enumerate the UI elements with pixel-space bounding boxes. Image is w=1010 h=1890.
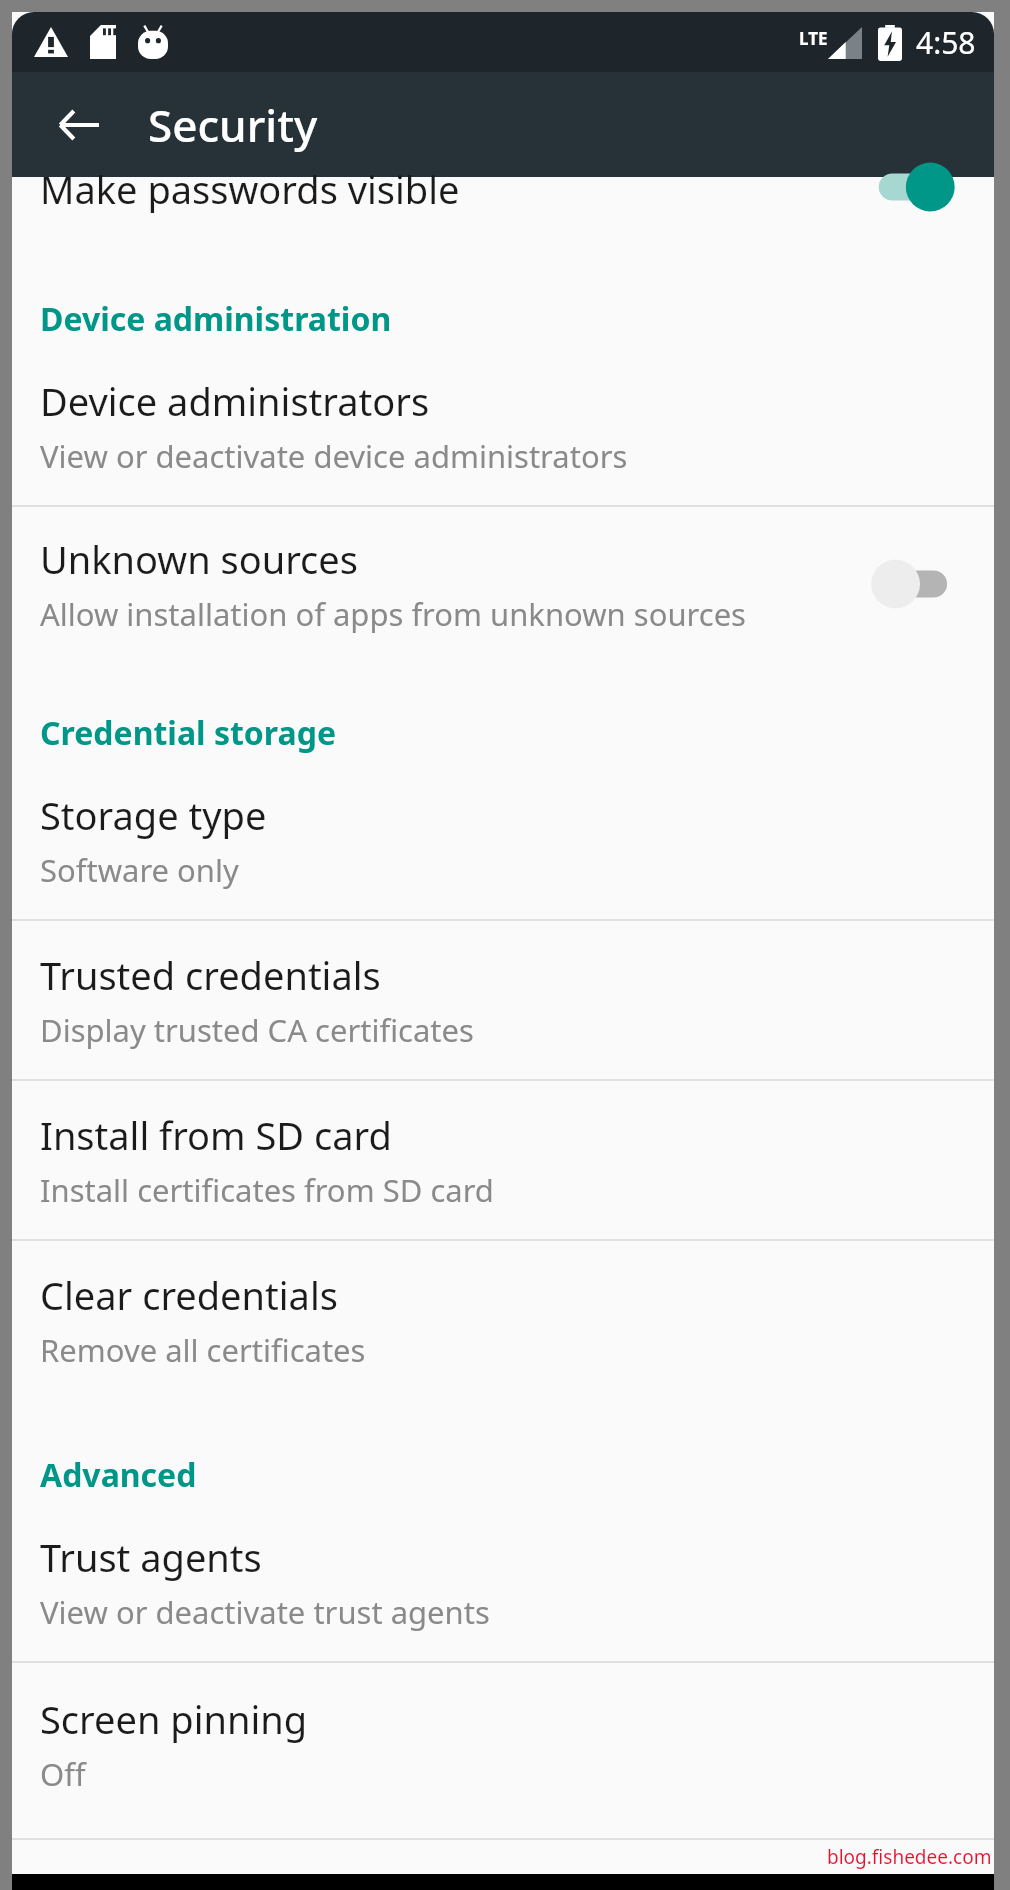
button[interactable]: Unknown sources: [12, 523, 994, 665]
button[interactable]: Trust agents: [12, 1531, 994, 1661]
button[interactable]: Make passwords visible: [12, 177, 994, 255]
button[interactable]: Trusted credentials: [12, 921, 994, 1079]
staticText: LTE: [799, 27, 828, 50]
staticText: Software only: [40, 849, 239, 891]
staticText: Security: [148, 95, 318, 155]
staticText: Install certificates from SD card: [40, 1169, 494, 1211]
staticText: Clear credentials: [40, 1269, 338, 1321]
button[interactable]: Clear credentials: [12, 1241, 994, 1399]
staticText: blog.fishedee.com: [827, 1844, 992, 1870]
staticText: Unknown sources: [40, 533, 358, 585]
staticText: Remove all certificates: [40, 1329, 366, 1371]
other: Toggle on: [864, 161, 956, 213]
staticText: Off: [40, 1753, 86, 1795]
staticText: View or deactivate trust agents: [40, 1591, 490, 1633]
staticText: Install from SD card: [40, 1109, 392, 1161]
staticText: Device administration: [40, 297, 392, 341]
staticText: Make passwords visible: [40, 163, 460, 215]
button[interactable]: Device administrators: [12, 375, 994, 505]
staticText: Advanced: [40, 1453, 197, 1497]
staticText: Display trusted CA certificates: [40, 1009, 474, 1051]
staticText: Credential storage: [40, 711, 337, 755]
staticText: Screen pinning: [40, 1693, 308, 1745]
staticText: Storage type: [40, 789, 267, 841]
button[interactable]: Install from SD card: [12, 1081, 994, 1239]
staticText: Trusted credentials: [40, 949, 381, 1001]
staticText: Trust agents: [40, 1531, 262, 1583]
button[interactable]: Storage type: [12, 789, 994, 919]
other: Toggle off: [868, 558, 960, 610]
staticText: View or deactivate device administrators: [40, 435, 628, 477]
staticText: 4:58: [916, 22, 976, 63]
button[interactable]: Screen pinning: [12, 1663, 994, 1823]
button[interactable]: Back: [42, 89, 114, 161]
staticText: Allow installation of apps from unknown …: [40, 593, 746, 635]
staticText: Device administrators: [40, 375, 430, 427]
